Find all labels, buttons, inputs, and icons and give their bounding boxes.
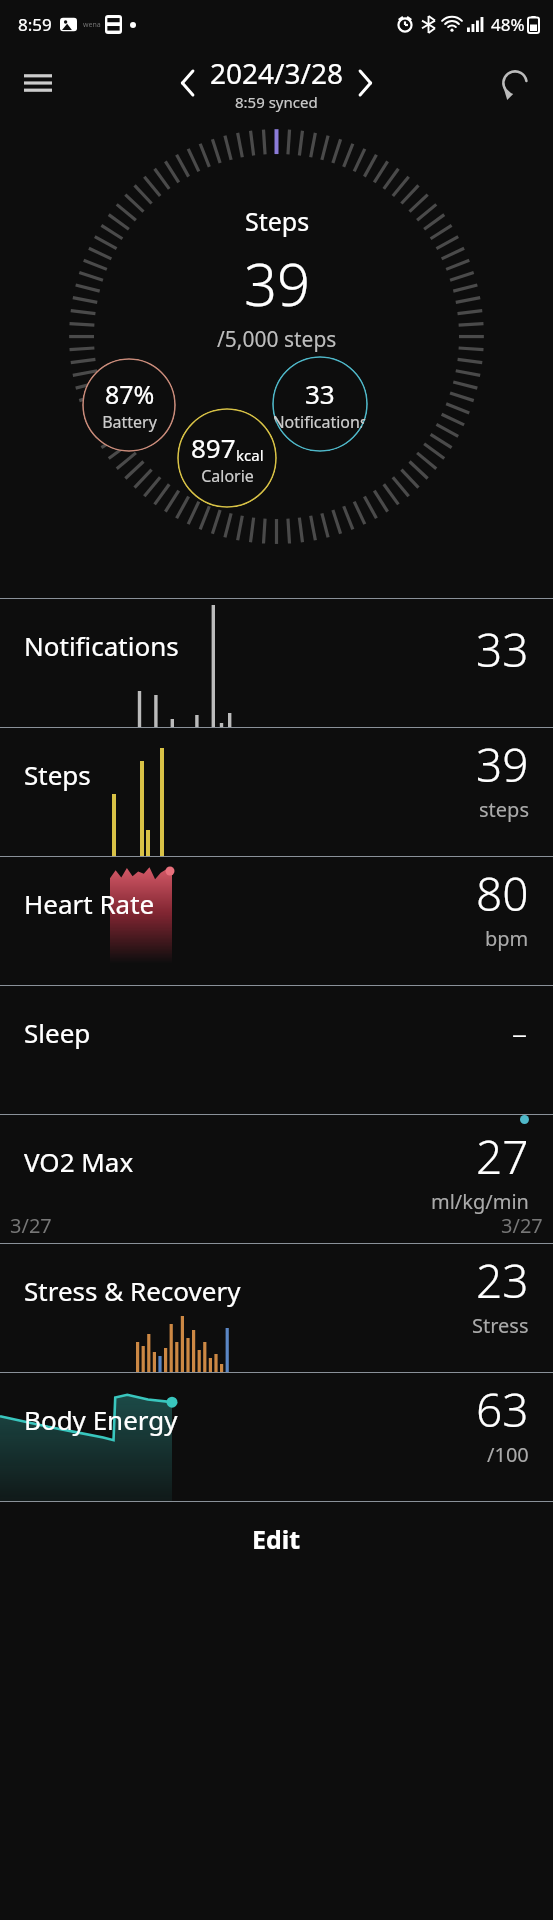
staticText: 39 (476, 733, 529, 796)
staticText: Stress (472, 1312, 529, 1339)
staticText: bpm (485, 925, 529, 952)
staticText: 39 (244, 244, 311, 323)
staticText: Steps (24, 757, 91, 792)
button[interactable]: VO2 Max (0, 1115, 553, 1243)
staticText: 27 (476, 1125, 529, 1188)
button[interactable]: 87% (82, 358, 176, 452)
staticText: Body Energy (24, 1402, 178, 1437)
button[interactable]: Menu (14, 59, 62, 107)
staticText: Notifications (24, 628, 179, 663)
button[interactable]: Notifications (0, 599, 553, 727)
staticText: /5,000 steps (217, 325, 337, 354)
staticText: Sleep (24, 1015, 91, 1050)
staticText: 33 (476, 618, 529, 681)
staticText: 48% (491, 13, 525, 36)
staticText: Calorie (201, 465, 254, 487)
staticText: kcal (236, 445, 264, 465)
staticText: 33 (305, 376, 335, 411)
staticText: 2024/3/28 (210, 54, 343, 92)
staticText: Heart Rate (24, 886, 155, 921)
button[interactable]: Edit (0, 1502, 553, 1576)
staticText: – (512, 1012, 527, 1053)
staticText: Edit (252, 1522, 301, 1556)
button[interactable]: Stress & Recovery (0, 1244, 553, 1372)
staticText: 3/27 (10, 1212, 52, 1239)
staticText: 8:59 (18, 13, 52, 36)
staticText: 87% (105, 377, 155, 411)
button[interactable]: Previous day (166, 61, 210, 105)
button[interactable]: Body Energy (0, 1373, 553, 1501)
staticText: Notifications (272, 411, 368, 433)
staticText: Battery (102, 411, 157, 433)
staticText: 63 (476, 1378, 529, 1441)
staticText: 897 (191, 430, 236, 465)
staticText: 80 (476, 862, 529, 925)
staticText: ml/kg/min (431, 1188, 529, 1215)
button[interactable]: 33 (272, 356, 368, 452)
button[interactable]: Steps (0, 728, 553, 856)
staticText: steps (479, 796, 529, 823)
staticText: Stress & Recovery (24, 1273, 241, 1308)
staticText: 8:59 synced (235, 92, 318, 112)
button[interactable]: Sleep (0, 986, 553, 1114)
button[interactable]: Next day (343, 61, 387, 105)
staticText: /100 (487, 1441, 529, 1468)
staticText: 23 (476, 1249, 529, 1312)
button[interactable]: 897 (177, 408, 277, 508)
staticText: Steps (245, 204, 310, 238)
staticText: VO2 Max (24, 1144, 134, 1179)
staticText: wena (83, 20, 101, 30)
button[interactable]: Heart Rate (0, 857, 553, 985)
staticText: 3/27 (501, 1212, 543, 1239)
button[interactable]: Sync (491, 59, 539, 107)
